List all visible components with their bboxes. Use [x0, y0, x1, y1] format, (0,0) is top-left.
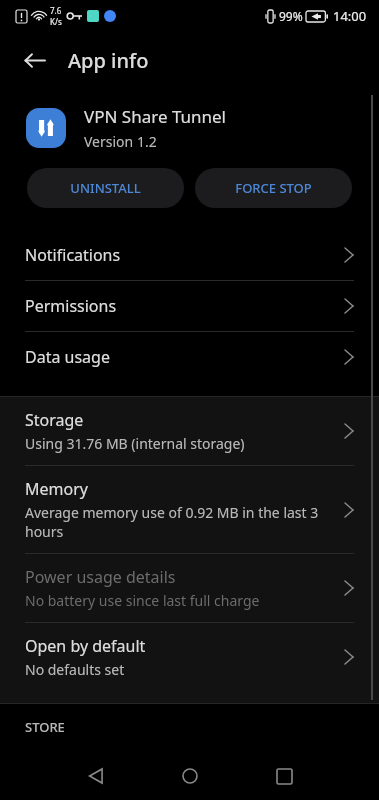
staticText: No battery use since last full charge	[25, 591, 260, 610]
button[interactable]: Open by default	[0, 623, 379, 691]
button[interactable]: Recent apps	[256, 752, 312, 800]
staticText: VPN Share Tunnel	[84, 105, 226, 128]
staticText: Data usage	[25, 346, 110, 368]
staticText: Storage	[25, 409, 84, 431]
button[interactable]: Data usage	[0, 332, 379, 382]
button[interactable]: Permissions	[0, 281, 379, 331]
staticText: Version 1.2	[84, 132, 157, 151]
button[interactable]: Back	[68, 752, 124, 800]
button[interactable]: Storage	[0, 397, 379, 465]
staticText: Using 31.76 MB (internal storage)	[25, 434, 245, 453]
staticText: Memory	[25, 478, 88, 500]
staticText: 99%	[279, 8, 303, 24]
staticText: Notifications	[25, 244, 121, 266]
staticText: Average memory use of 0.92 MB in the las…	[25, 503, 319, 541]
staticText: Open by default	[25, 635, 146, 657]
staticText: FORCE STOP	[235, 179, 312, 197]
button[interactable]: Home	[162, 752, 218, 800]
button[interactable]: UNINSTALL	[27, 168, 184, 208]
button[interactable]: FORCE STOP	[195, 168, 352, 208]
staticText: No defaults set	[25, 660, 125, 679]
staticText: App info	[68, 47, 149, 74]
staticText: 7.6	[50, 5, 62, 16]
staticText: Permissions	[25, 295, 117, 317]
button[interactable]: Back	[14, 40, 54, 80]
staticText: UNINSTALL	[70, 179, 141, 197]
button[interactable]: Notifications	[0, 230, 379, 280]
button[interactable]: Memory	[0, 466, 379, 553]
button[interactable]: Power usage details	[0, 554, 379, 622]
staticText: STORE	[25, 718, 65, 736]
staticText: Power usage details	[25, 566, 176, 588]
staticText: 14:00	[333, 7, 367, 25]
staticText: K/s	[50, 16, 62, 27]
